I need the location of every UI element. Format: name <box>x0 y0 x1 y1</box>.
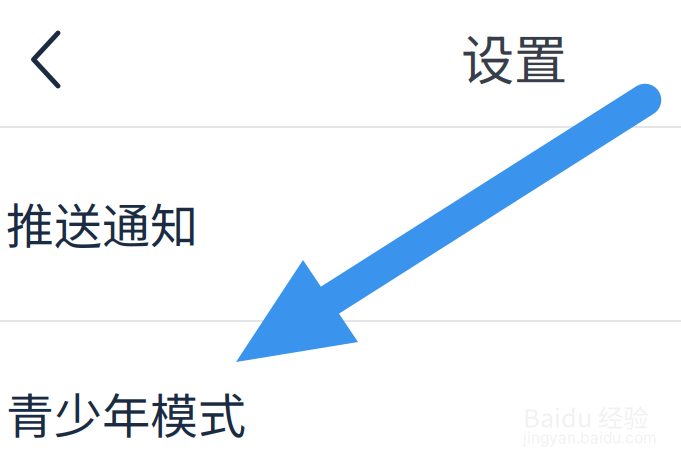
staticText: 设置 <box>461 18 567 95</box>
staticText: jingyan.baidu.com <box>523 429 656 447</box>
button[interactable]: 推送通知 <box>0 128 681 320</box>
staticText: 青少年模式 <box>6 378 246 447</box>
staticText: Baidu 经验 <box>523 398 648 435</box>
button[interactable]: 青少年模式 <box>0 322 681 464</box>
staticText: 推送通知 <box>6 188 198 257</box>
button[interactable]: Back <box>0 0 92 126</box>
